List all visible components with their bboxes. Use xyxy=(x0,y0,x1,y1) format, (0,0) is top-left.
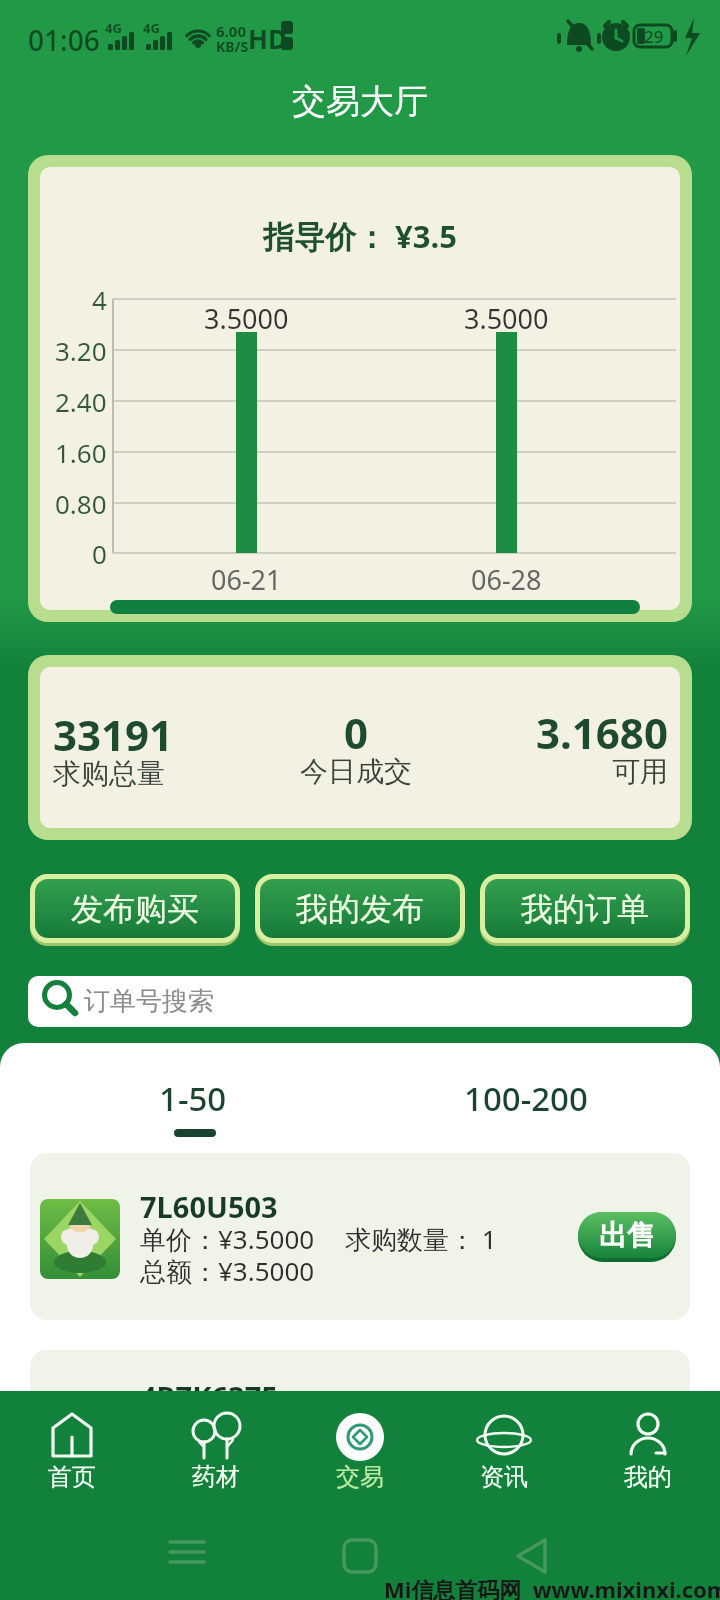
staticText: 4G xyxy=(143,19,160,37)
button[interactable] xyxy=(294,1395,426,1495)
staticText: 3.5000 xyxy=(464,300,549,334)
staticText: 4 xyxy=(92,282,107,316)
staticText: 首页 xyxy=(48,1462,96,1492)
staticText: 今日成交 xyxy=(300,754,412,788)
button[interactable] xyxy=(150,1395,282,1495)
staticText: Mi信息首码网 www.mixinxi.com xyxy=(384,1574,720,1600)
staticText: 01:06 xyxy=(28,21,100,59)
staticText: 0 xyxy=(92,536,107,570)
staticText: 1.60 xyxy=(55,435,107,469)
staticText: HD xyxy=(248,21,287,56)
staticText: 求购总量 xyxy=(53,756,165,791)
staticText: KB/S xyxy=(216,37,249,56)
staticText: 4R7K6375 xyxy=(140,1377,278,1416)
button[interactable] xyxy=(30,1153,690,1320)
staticText: 3.5000 xyxy=(204,300,289,334)
staticText: 发布购买 xyxy=(71,889,199,929)
staticText: 33191 xyxy=(53,706,174,763)
staticText: 我的 xyxy=(624,1462,672,1492)
staticText: 4G xyxy=(105,19,122,37)
button[interactable]: 订单号搜索 xyxy=(28,976,692,1027)
staticText: 7L60U503 xyxy=(140,1187,278,1226)
staticText: 可用 xyxy=(612,754,668,788)
button[interactable]: 我的发布 xyxy=(255,874,465,943)
staticText: 药材 xyxy=(192,1462,240,1492)
staticText: 出售 xyxy=(599,1218,655,1253)
staticText: 3.20 xyxy=(55,333,107,367)
staticText: 指导价： ¥3.5 xyxy=(263,215,457,257)
staticText: 求购数量： 1 xyxy=(345,1221,497,1257)
staticText: 我的发布 xyxy=(296,889,424,929)
staticText: 0 xyxy=(344,704,369,756)
button[interactable]: 1-50 xyxy=(97,1066,289,1130)
button[interactable]: 100-200 xyxy=(430,1066,622,1130)
staticText: 2.40 xyxy=(55,384,107,418)
staticText: 6.00 xyxy=(216,21,246,41)
staticText: 06-28 xyxy=(471,561,542,595)
staticText: 资讯 xyxy=(480,1462,528,1492)
button[interactable] xyxy=(6,1395,138,1495)
staticText: 100-200 xyxy=(464,1076,588,1121)
staticText: 3.1680 xyxy=(536,704,668,756)
staticText: 29 xyxy=(644,25,664,48)
staticText: 总额：¥3.5000 xyxy=(140,1253,315,1289)
button[interactable] xyxy=(582,1395,714,1495)
staticText: 我的订单 xyxy=(521,889,649,929)
button[interactable]: 我的订单 xyxy=(480,874,690,943)
staticText: 1-50 xyxy=(159,1076,227,1121)
staticText: 订单号搜索 xyxy=(84,985,214,1018)
button[interactable] xyxy=(438,1395,570,1495)
staticText: 交易 xyxy=(336,1462,384,1492)
button[interactable]: 发布购买 xyxy=(30,874,240,943)
staticText: 06-21 xyxy=(211,561,282,595)
button[interactable]: 出售 xyxy=(578,1212,676,1258)
staticText: 交易大厅 xyxy=(292,80,428,123)
staticText: 0.80 xyxy=(55,486,107,520)
staticText: 单价：¥3.5000 xyxy=(140,1221,315,1257)
